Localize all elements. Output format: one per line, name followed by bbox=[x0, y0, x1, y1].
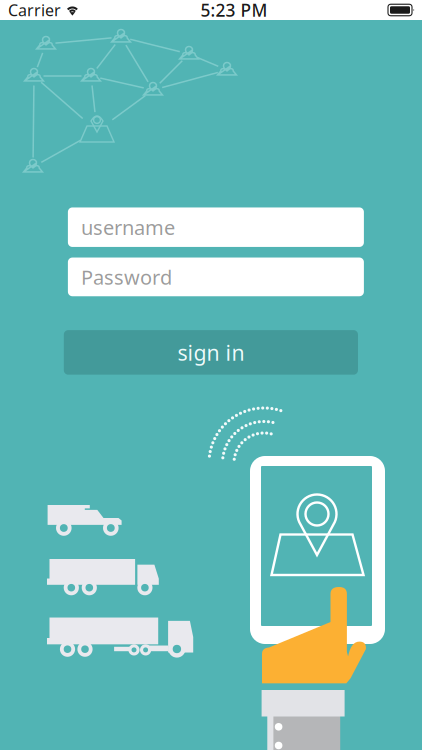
staticText: Carrier bbox=[8, 0, 61, 21]
button[interactable]: sign in bbox=[64, 330, 358, 375]
staticText: 5:23 PM bbox=[200, 0, 267, 21]
button[interactable]: username bbox=[68, 207, 364, 247]
staticText: sign in bbox=[177, 338, 244, 366]
staticText: Password bbox=[81, 264, 172, 290]
staticText: username bbox=[81, 214, 175, 240]
button[interactable]: Password bbox=[68, 257, 364, 296]
